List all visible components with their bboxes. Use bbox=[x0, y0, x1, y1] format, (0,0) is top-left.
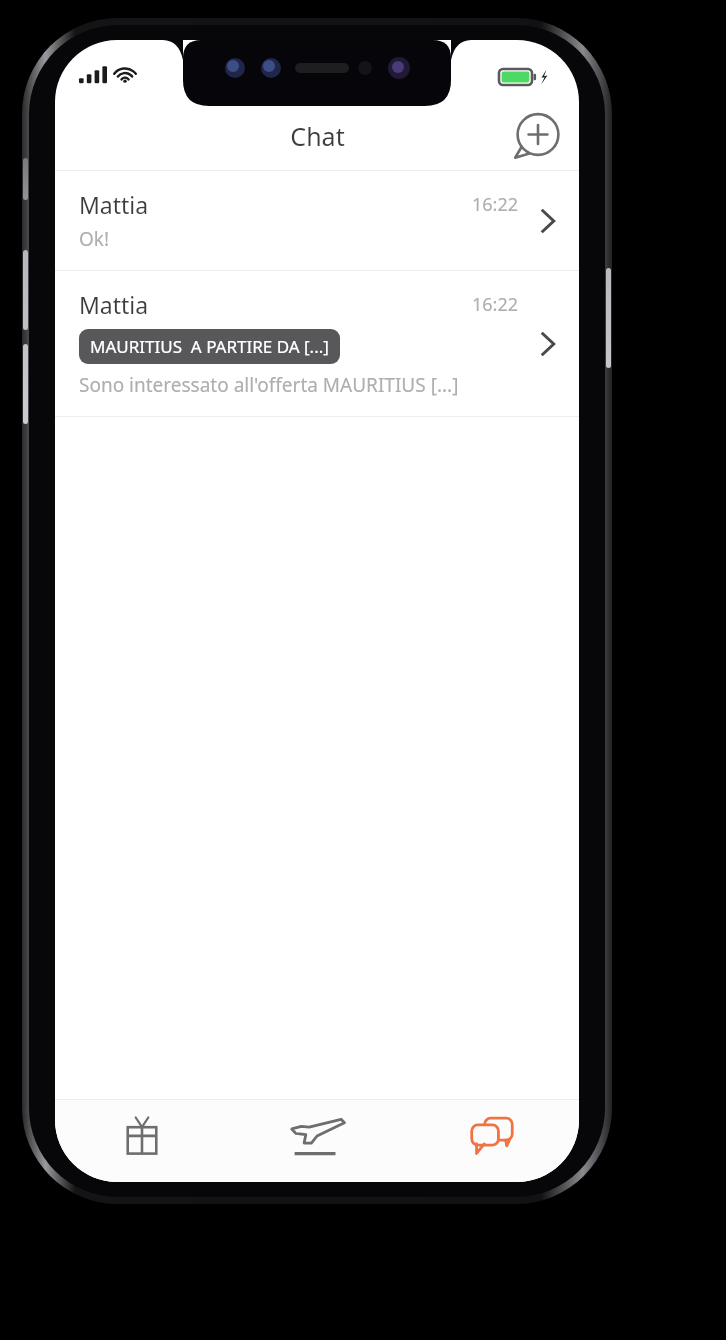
staticText: 16:22 bbox=[472, 192, 519, 217]
staticText: Mattia bbox=[79, 189, 472, 220]
button[interactable]: Mattia bbox=[55, 171, 579, 270]
button[interactable]: Mattia bbox=[55, 271, 579, 416]
button[interactable]: New chat bbox=[511, 109, 565, 163]
staticText: 16:22 bbox=[472, 292, 519, 317]
staticText: Sono interessato all'offerta MAURITIUS [… bbox=[79, 372, 459, 398]
button[interactable]: Offers bbox=[55, 1100, 229, 1182]
button[interactable]: Chat bbox=[404, 1100, 579, 1182]
button[interactable]: Flights bbox=[229, 1100, 404, 1182]
staticText: Chat bbox=[290, 119, 345, 153]
staticText: MAURITIUS A PARTIRE DA [...] bbox=[90, 335, 329, 358]
staticText: Mattia bbox=[79, 289, 472, 320]
staticText: Ok! bbox=[79, 226, 110, 252]
